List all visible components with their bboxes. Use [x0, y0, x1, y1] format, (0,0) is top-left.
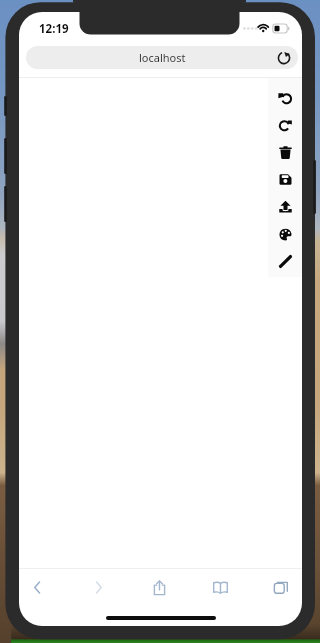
button[interactable]: Redo [268, 114, 302, 134]
button[interactable]: Back [24, 569, 50, 605]
button[interactable]: Upload [268, 196, 302, 216]
button[interactable]: Reload [274, 48, 294, 68]
button[interactable]: Forward [85, 569, 111, 605]
button[interactable]: Tabs [268, 569, 294, 605]
button[interactable]: Colors [268, 224, 302, 244]
button[interactable]: localhost [26, 46, 298, 69]
button[interactable]: Save [268, 169, 302, 189]
button[interactable]: Undo [268, 87, 302, 107]
staticText: localhost [139, 50, 186, 65]
button[interactable]: Share [146, 569, 172, 605]
button[interactable]: Draw [268, 251, 302, 271]
staticText: 12:19 [39, 21, 69, 37]
button[interactable]: Delete [268, 142, 302, 162]
button[interactable]: Bookmarks [207, 569, 233, 605]
